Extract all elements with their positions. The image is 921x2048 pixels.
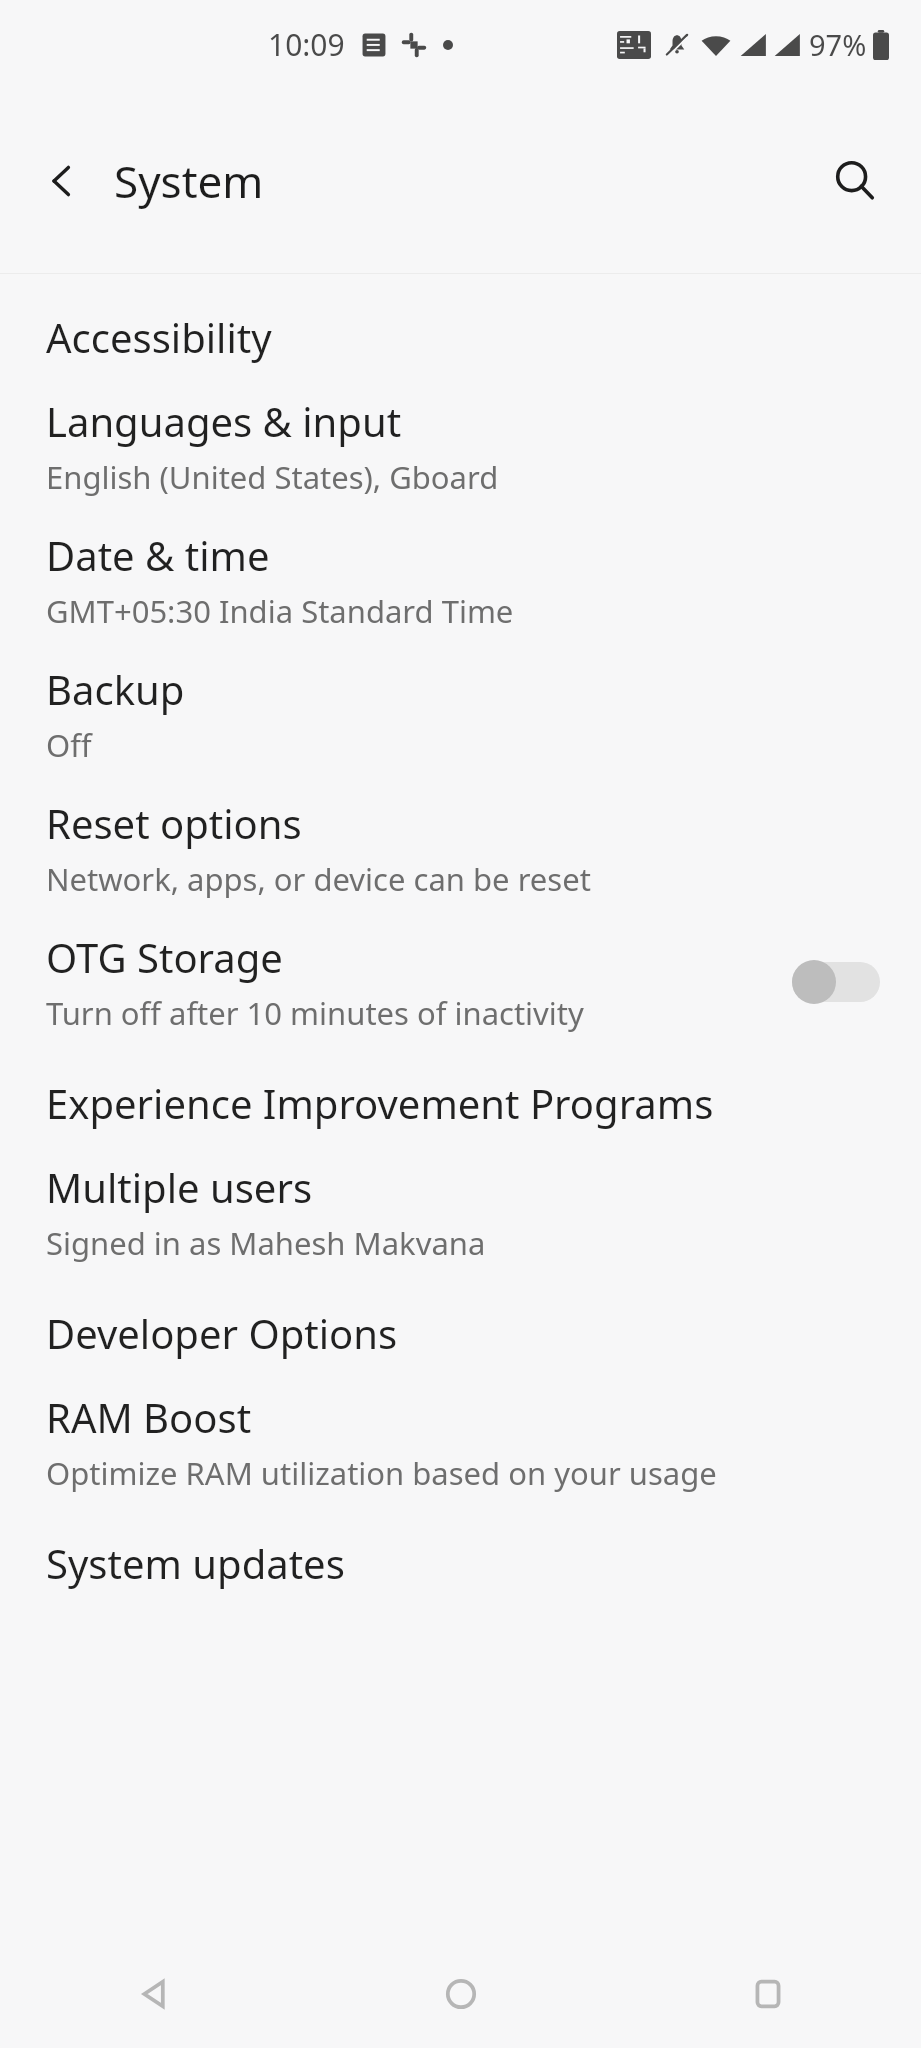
staticText: Backup: [46, 662, 185, 716]
staticText: Turn off after 10 minutes of inactivity: [46, 992, 584, 1034]
staticText: Optimize RAM utilization based on your u…: [46, 1452, 717, 1494]
button[interactable]: System updates: [0, 1536, 921, 1590]
button[interactable]: OTG Storage toggle: [781, 951, 891, 1013]
button[interactable]: Search: [815, 141, 895, 221]
button[interactable]: Date & time: [0, 528, 921, 632]
button[interactable]: OTG Storage: [0, 930, 921, 1034]
staticText: OTG Storage: [46, 930, 283, 984]
staticText: Languages & input: [46, 394, 402, 448]
button[interactable]: Backup: [0, 662, 921, 766]
staticText: Off: [46, 724, 92, 766]
staticText: System updates: [46, 1536, 345, 1590]
button[interactable]: Experience Improvement Programs: [0, 1076, 921, 1130]
staticText: Date & time: [46, 528, 270, 582]
button[interactable]: Developer Options: [0, 1306, 921, 1360]
staticText: Signed in as Mahesh Makvana: [46, 1222, 486, 1264]
staticText: 97%: [809, 25, 867, 64]
button[interactable]: Accessibility: [0, 310, 921, 364]
staticText: Accessibility: [46, 310, 272, 364]
staticText: Reset options: [46, 796, 302, 850]
button[interactable]: Reset options: [0, 796, 921, 900]
staticText: GMT+05:30 India Standard Time: [46, 590, 514, 632]
staticText: English (United States), Gboard: [46, 456, 499, 498]
staticText: Network, apps, or device can be reset: [46, 858, 591, 900]
staticText: System: [114, 151, 264, 211]
button[interactable]: Multiple users: [0, 1160, 921, 1264]
button[interactable]: Home: [307, 1940, 614, 2048]
button[interactable]: Back: [24, 143, 100, 219]
staticText: 10:09: [268, 24, 345, 65]
staticText: Experience Improvement Programs: [46, 1076, 714, 1130]
button[interactable]: Recent apps: [614, 1940, 921, 2048]
button[interactable]: RAM Boost: [0, 1390, 921, 1494]
button[interactable]: Back: [0, 1940, 307, 2048]
staticText: Multiple users: [46, 1160, 313, 1214]
staticText: Developer Options: [46, 1306, 398, 1360]
button[interactable]: Languages & input: [0, 394, 921, 498]
staticText: RAM Boost: [46, 1390, 252, 1444]
